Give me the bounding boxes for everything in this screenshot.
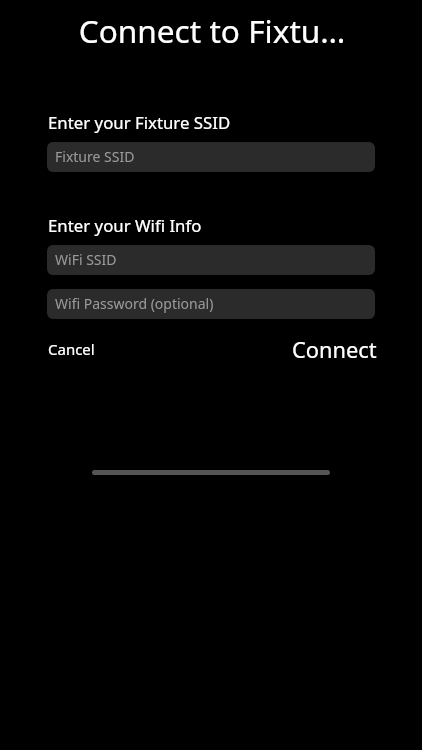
staticText: Fixture SSID — [55, 147, 135, 166]
button[interactable]: Wifi Password (optional) — [47, 289, 375, 319]
other: Connect to Fixture dialog — [0, 0, 422, 750]
other: Home indicator — [92, 470, 330, 475]
staticText: Connect — [292, 335, 377, 365]
staticText: WiFi SSID — [55, 250, 117, 269]
staticText: Wifi Password (optional) — [55, 294, 214, 313]
button[interactable]: WiFi SSID — [47, 245, 375, 275]
button[interactable]: Cancel — [48, 339, 95, 359]
button[interactable]: Fixture SSID — [47, 142, 375, 172]
button[interactable]: Connect — [292, 335, 377, 365]
staticText: Enter your Wifi Info — [48, 214, 202, 237]
staticText: Connect to Fixtu… — [1, 9, 422, 52]
staticText: Cancel — [48, 339, 95, 359]
staticText: Enter your Fixture SSID — [48, 111, 231, 134]
